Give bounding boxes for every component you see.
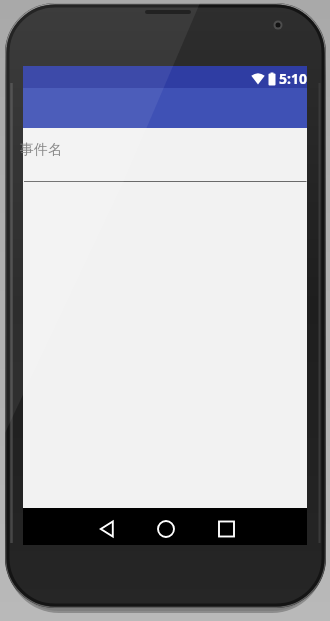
button[interactable] — [148, 513, 184, 545]
button[interactable]: 事件名 — [23, 138, 307, 184]
button[interactable] — [208, 513, 244, 545]
staticText: 事件名 — [20, 141, 62, 159]
staticText: 5:10 — [279, 69, 307, 88]
button[interactable] — [88, 513, 125, 545]
